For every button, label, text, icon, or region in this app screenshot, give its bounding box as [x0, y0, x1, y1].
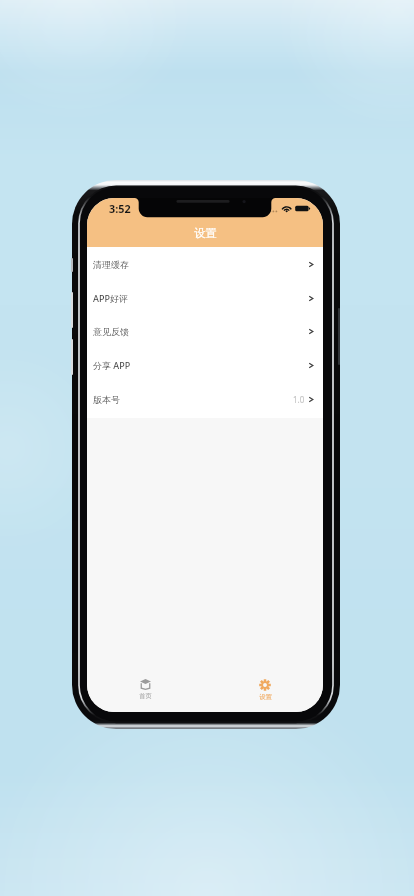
staticText: 版本号 [93, 394, 120, 405]
staticText: 分享 APP [93, 359, 131, 371]
button[interactable]: 意见反馈 [87, 314, 323, 348]
button[interactable]: 分享 APP [87, 348, 323, 382]
button[interactable]: 版本号 [87, 382, 323, 416]
staticText: 首页 [139, 692, 152, 700]
staticText: 1.0 [293, 394, 305, 405]
staticText: 设置 [194, 226, 217, 240]
button[interactable]: APP好评 [87, 281, 323, 315]
staticText: 设置 [259, 693, 272, 701]
button[interactable]: 设置 [225, 661, 305, 712]
button[interactable]: 首页 [105, 661, 185, 712]
staticText: 意见反馈 [93, 326, 129, 337]
staticText: 3:52 [109, 201, 131, 216]
button[interactable]: 清理缓存 [87, 247, 323, 281]
staticText: APP好评 [93, 292, 128, 304]
staticText: 清理缓存 [93, 259, 129, 270]
